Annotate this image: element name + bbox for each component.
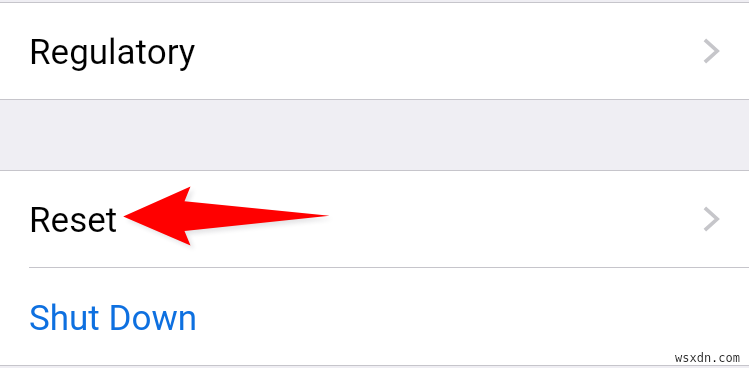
other: Open Regulatory	[703, 38, 719, 64]
staticText: Regulatory	[29, 32, 196, 73]
staticText: Shut Down	[29, 298, 198, 339]
staticText: wsxdn.com	[675, 351, 741, 365]
button[interactable]: Regulatory	[0, 3, 749, 99]
staticText: Reset	[29, 200, 118, 241]
button[interactable]: Reset	[0, 171, 749, 268]
button[interactable]: Shut Down	[0, 268, 749, 365]
other: Open Reset	[703, 206, 719, 232]
